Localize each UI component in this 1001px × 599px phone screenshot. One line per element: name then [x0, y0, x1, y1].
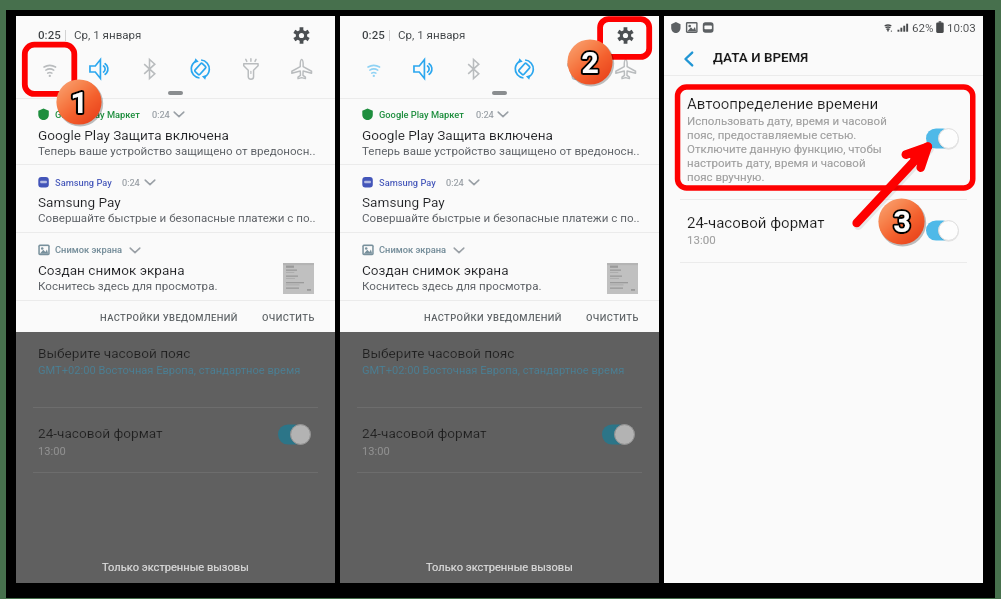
staticText: 13:00 [362, 445, 452, 458]
staticText: 62% [912, 21, 942, 35]
staticText: НАСТРОЙКИ УВЕДОМЛЕНИЙ [424, 312, 562, 323]
staticText: Снимок экрана [55, 244, 195, 255]
staticText: Samsung Pay [362, 194, 647, 210]
staticText: Google Play Защита включена [38, 127, 323, 143]
staticText: 0:24 [446, 177, 476, 188]
button[interactable]: ОЧИСТИТЬ [580, 304, 642, 330]
staticText: Ср, 1 января [74, 28, 194, 42]
staticText: Samsung Pay [38, 194, 323, 210]
staticText: Коснитесь здесь для просмотра. [362, 279, 652, 293]
staticText: Совершайте быстрые и безопасные платежи … [362, 211, 652, 225]
button[interactable]: Настройки [609, 19, 641, 51]
staticText: Google Play Защита включена [362, 127, 647, 143]
staticText: 0:25 [362, 28, 402, 42]
staticText: ОЧИСТИТЬ [262, 312, 315, 323]
button[interactable]: Автоопределение времени [926, 128, 959, 149]
button[interactable] [340, 232, 659, 296]
staticText: 0:24 [152, 109, 182, 120]
staticText: Выберите часовой пояс [362, 345, 622, 361]
staticText: 24-часовой формат [38, 425, 258, 441]
staticText: Теперь ваше устройство защищено от вредо… [38, 144, 328, 158]
staticText: GMT+02:00 Восточная Европа, стандартное … [38, 364, 333, 377]
staticText: 24-часовой формат [687, 214, 907, 232]
staticText: 10:03 [947, 21, 987, 35]
button[interactable] [16, 232, 335, 296]
staticText: 2 [581, 45, 599, 80]
staticText: Снимок экрана [379, 244, 519, 255]
button[interactable] [340, 99, 659, 161]
button[interactable]: НАСТРОЙКИ УВЕДОМЛЕНИЙ [418, 304, 564, 330]
button[interactable]: Настройки [285, 19, 317, 51]
staticText: 13:00 [38, 445, 128, 458]
button[interactable]: 24-часовой формат [602, 424, 635, 445]
staticText: Ср, 1 января [398, 28, 518, 42]
button[interactable]: 24-часовой формат [278, 424, 311, 445]
button[interactable]: Автоопределение времени [664, 86, 983, 193]
staticText: 2 [581, 45, 599, 80]
staticText: GMT+02:00 Восточная Европа, стандартное … [362, 364, 657, 377]
staticText: Только экстренные вызовы [426, 561, 573, 574]
staticText: Samsung Pay [55, 177, 195, 188]
staticText: Выберите часовой пояс [38, 345, 298, 361]
staticText: 1 [70, 85, 88, 120]
button[interactable] [16, 99, 335, 161]
button[interactable] [16, 165, 335, 228]
staticText: 0:25 [38, 28, 78, 42]
staticText: НАСТРОЙКИ УВЕДОМЛЕНИЙ [100, 312, 238, 323]
button[interactable]: НАСТРОЙКИ УВЕДОМЛЕНИЙ [94, 304, 240, 330]
staticText: ДАТА И ВРЕМЯ [713, 50, 913, 66]
staticText: Совершайте быстрые и безопасные платежи … [38, 211, 328, 225]
staticText: 3 [893, 204, 911, 239]
button[interactable]: ОЧИСТИТЬ [256, 304, 318, 330]
staticText: Google Play Маркет [379, 109, 519, 120]
staticText: Google Play Маркет [55, 109, 195, 120]
staticText: 13:00 [687, 233, 777, 246]
staticText: Создан снимок экрана [38, 262, 323, 278]
button[interactable]: Назад [673, 43, 705, 75]
staticText: 0:24 [122, 177, 152, 188]
staticText: Автоопределение времени [687, 95, 937, 113]
staticText: 0:24 [476, 109, 506, 120]
staticText: Создан снимок экрана [362, 262, 647, 278]
staticText: 3 [893, 204, 911, 239]
staticText: Теперь ваше устройство защищено от вредо… [362, 144, 652, 158]
staticText: Использовать дату, время и часовой пояс,… [687, 114, 887, 184]
staticText: Коснитесь здесь для просмотра. [38, 279, 328, 293]
staticText: Samsung Pay [379, 177, 519, 188]
button[interactable] [340, 165, 659, 228]
staticText: 24-часовой формат [362, 425, 582, 441]
staticText: Только экстренные вызовы [102, 561, 249, 574]
button[interactable]: 24-часовой формат [664, 206, 983, 261]
staticText: 1 [70, 85, 88, 120]
staticText: ОЧИСТИТЬ [586, 312, 639, 323]
button[interactable]: 24-часовой формат [926, 220, 959, 241]
